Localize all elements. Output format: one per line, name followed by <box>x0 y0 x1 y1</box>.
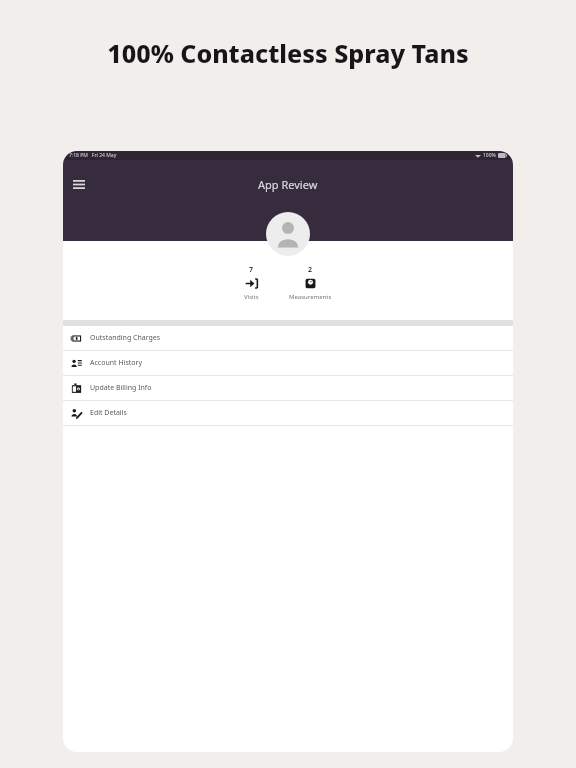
button[interactable]: Open navigation menu <box>67 172 91 196</box>
staticText: 7:18 PM Fri 24 May <box>69 152 117 159</box>
staticText: 100% <box>483 152 496 159</box>
staticText: App Review <box>258 177 318 192</box>
button[interactable]: Outstanding Charges <box>63 326 513 350</box>
button[interactable]: Update Billing Info <box>63 376 513 400</box>
staticText: Update Billing Info <box>90 383 152 393</box>
staticText: Measurements <box>289 293 332 301</box>
staticText: 2 <box>308 265 313 275</box>
button[interactable]: 2 <box>285 265 336 301</box>
button[interactable]: Edit Details <box>63 401 513 425</box>
staticText: 100% Contactless Spray Tans <box>107 36 469 70</box>
staticText: Visits <box>244 293 259 301</box>
staticText: Outstanding Charges <box>90 333 161 343</box>
staticText: 7 <box>249 265 254 275</box>
button[interactable]: 7 <box>240 265 263 301</box>
staticText: Edit Details <box>90 408 127 418</box>
button[interactable]: Account History <box>63 351 513 375</box>
staticText: Account History <box>90 358 142 368</box>
